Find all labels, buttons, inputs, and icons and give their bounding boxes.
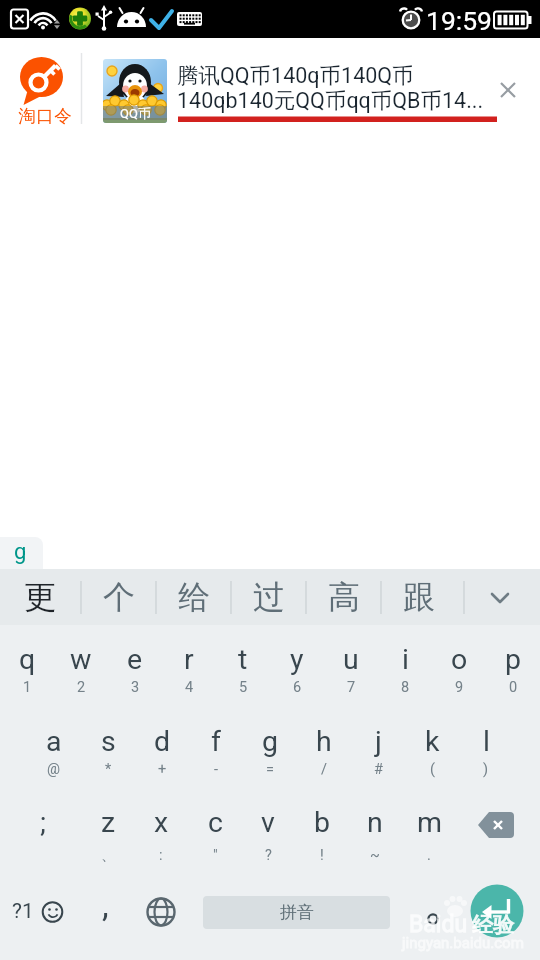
staticText: j	[375, 725, 382, 758]
staticText: ;	[40, 806, 47, 839]
button[interactable]	[27, 713, 81, 785]
button[interactable]: 高	[308, 569, 380, 625]
button[interactable]	[135, 795, 187, 867]
button[interactable]	[242, 795, 294, 867]
staticText: :	[159, 847, 163, 864]
staticText: 3	[131, 679, 140, 696]
button[interactable]	[349, 795, 401, 867]
button[interactable]	[296, 795, 348, 867]
staticText: r	[184, 643, 194, 676]
button[interactable]	[189, 713, 243, 785]
staticText: ?	[265, 847, 272, 864]
button[interactable]	[54, 631, 108, 703]
staticText: w	[70, 643, 92, 676]
staticText: 更	[24, 577, 56, 617]
staticText: 6	[293, 679, 302, 696]
staticText: g	[262, 725, 279, 758]
staticText: ,	[102, 885, 109, 925]
staticText: f	[211, 725, 221, 758]
button[interactable]	[0, 42, 488, 137]
button[interactable]	[432, 631, 486, 703]
staticText: y	[290, 643, 304, 676]
staticText: 2	[77, 679, 86, 696]
button[interactable]	[108, 631, 162, 703]
staticText: ~	[370, 847, 380, 864]
button[interactable]	[403, 795, 455, 867]
staticText: -	[214, 761, 219, 778]
staticText: m	[417, 806, 442, 839]
button[interactable]	[81, 713, 135, 785]
button[interactable]	[378, 631, 432, 703]
staticText: /	[321, 761, 327, 778]
staticText: t	[238, 643, 248, 676]
button[interactable]	[162, 631, 216, 703]
button[interactable]	[216, 631, 270, 703]
staticText: Baidu	[409, 911, 468, 938]
button[interactable]	[0, 631, 54, 703]
staticText: #	[374, 761, 383, 778]
button[interactable]	[189, 795, 241, 867]
button[interactable]: 跟	[383, 569, 455, 625]
staticText: e	[127, 643, 143, 676]
button[interactable]	[82, 795, 134, 867]
button[interactable]	[470, 798, 526, 854]
staticText: 个	[103, 577, 135, 617]
staticText: QQ币	[120, 105, 151, 121]
button[interactable]	[6, 886, 66, 938]
button[interactable]	[16, 795, 70, 867]
staticText: d	[154, 725, 171, 758]
staticText: 5	[239, 679, 248, 696]
staticText: .	[427, 847, 431, 864]
button[interactable]	[478, 575, 523, 620]
staticText: (	[430, 761, 435, 778]
button[interactable]	[470, 884, 524, 938]
button[interactable]	[85, 886, 125, 938]
staticText: z	[101, 806, 116, 839]
button[interactable]	[405, 713, 459, 785]
button[interactable]	[140, 886, 184, 938]
staticText: 高	[328, 577, 360, 617]
staticText: o	[451, 643, 468, 676]
button[interactable]: 更	[4, 569, 76, 625]
button[interactable]	[135, 713, 189, 785]
staticText: k	[425, 725, 440, 758]
button[interactable]	[486, 631, 540, 703]
button[interactable]	[351, 713, 405, 785]
button[interactable]	[297, 713, 351, 785]
button[interactable]: 过	[233, 569, 305, 625]
button[interactable]	[270, 631, 324, 703]
staticText: "	[213, 847, 218, 864]
staticText: q	[19, 643, 36, 676]
button[interactable]	[324, 631, 378, 703]
staticText: 9	[455, 679, 464, 696]
staticText: =	[266, 761, 274, 778]
staticText: ?1	[12, 899, 34, 924]
staticText: p	[505, 643, 522, 676]
staticText: 4	[185, 679, 194, 696]
staticText: 经验	[472, 912, 514, 938]
staticText: 拼音	[280, 902, 314, 923]
staticText: i	[402, 643, 409, 676]
button[interactable]	[243, 713, 297, 785]
staticText: 7	[347, 679, 356, 696]
staticText: l	[483, 725, 490, 758]
button[interactable]	[459, 713, 513, 785]
staticText: 1	[23, 679, 32, 696]
button[interactable]	[415, 898, 453, 940]
staticText: 给	[178, 577, 210, 617]
staticText: 淘口令	[18, 105, 72, 127]
staticText: n	[367, 806, 383, 839]
staticText: c	[208, 806, 223, 839]
staticText: )	[483, 761, 489, 778]
staticText: a	[46, 725, 62, 758]
button[interactable]: 个	[83, 569, 155, 625]
staticText: jingyan.baidu.com	[402, 934, 524, 952]
button[interactable]: 给	[158, 569, 230, 625]
staticText: g	[14, 539, 27, 565]
button[interactable]	[494, 76, 524, 106]
staticText: 跟	[403, 577, 435, 617]
staticText: b	[314, 806, 331, 839]
button[interactable]	[203, 896, 390, 929]
staticText: *	[105, 761, 112, 778]
staticText: 8	[401, 679, 410, 696]
